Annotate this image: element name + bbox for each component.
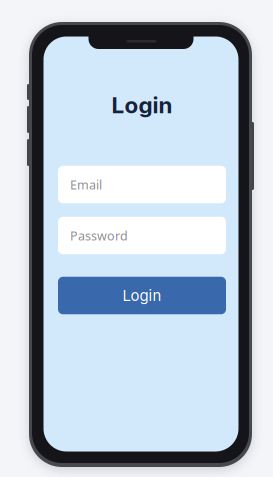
button[interactable]: Password [58,217,226,254]
staticText: Password [70,227,128,244]
button[interactable]: Login [58,277,226,314]
button[interactable]: Email [58,166,226,203]
staticText: Email [70,176,102,193]
staticText: Login [122,286,161,305]
staticText: Login [111,91,172,119]
